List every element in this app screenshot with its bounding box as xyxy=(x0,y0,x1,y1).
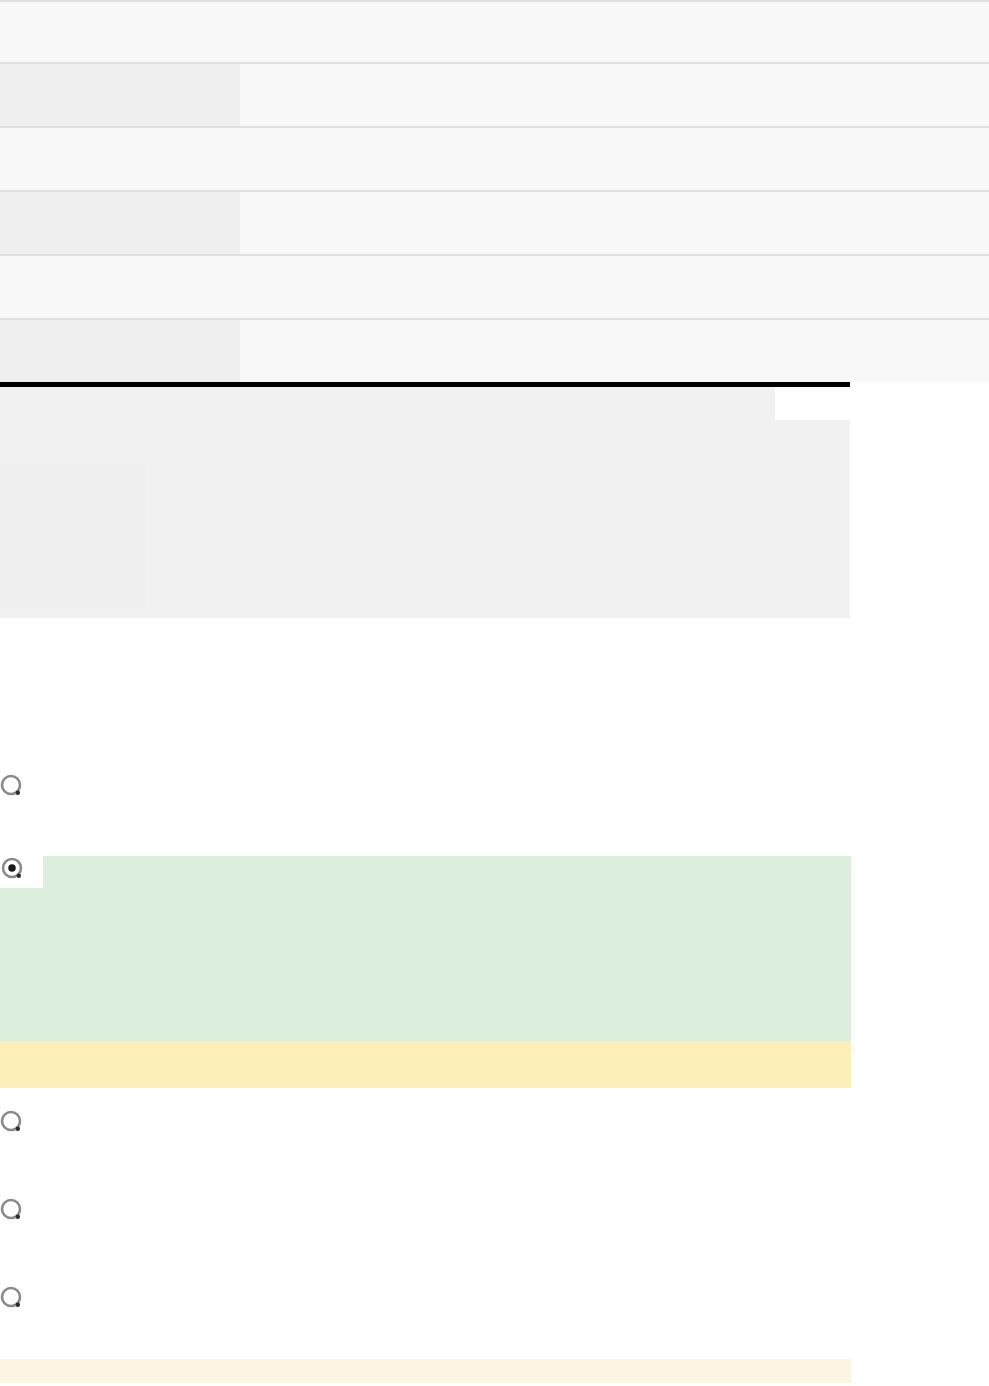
button[interactable] xyxy=(0,192,989,254)
button[interactable]: Option 5 xyxy=(0,1286,22,1308)
button[interactable]: Option 2, selected xyxy=(1,857,23,879)
button[interactable] xyxy=(0,64,989,126)
button[interactable] xyxy=(0,320,989,382)
button[interactable]: Option 1 xyxy=(0,774,22,796)
button[interactable]: Option 4 xyxy=(0,1198,22,1220)
button[interactable]: Option 3 xyxy=(0,1110,22,1132)
